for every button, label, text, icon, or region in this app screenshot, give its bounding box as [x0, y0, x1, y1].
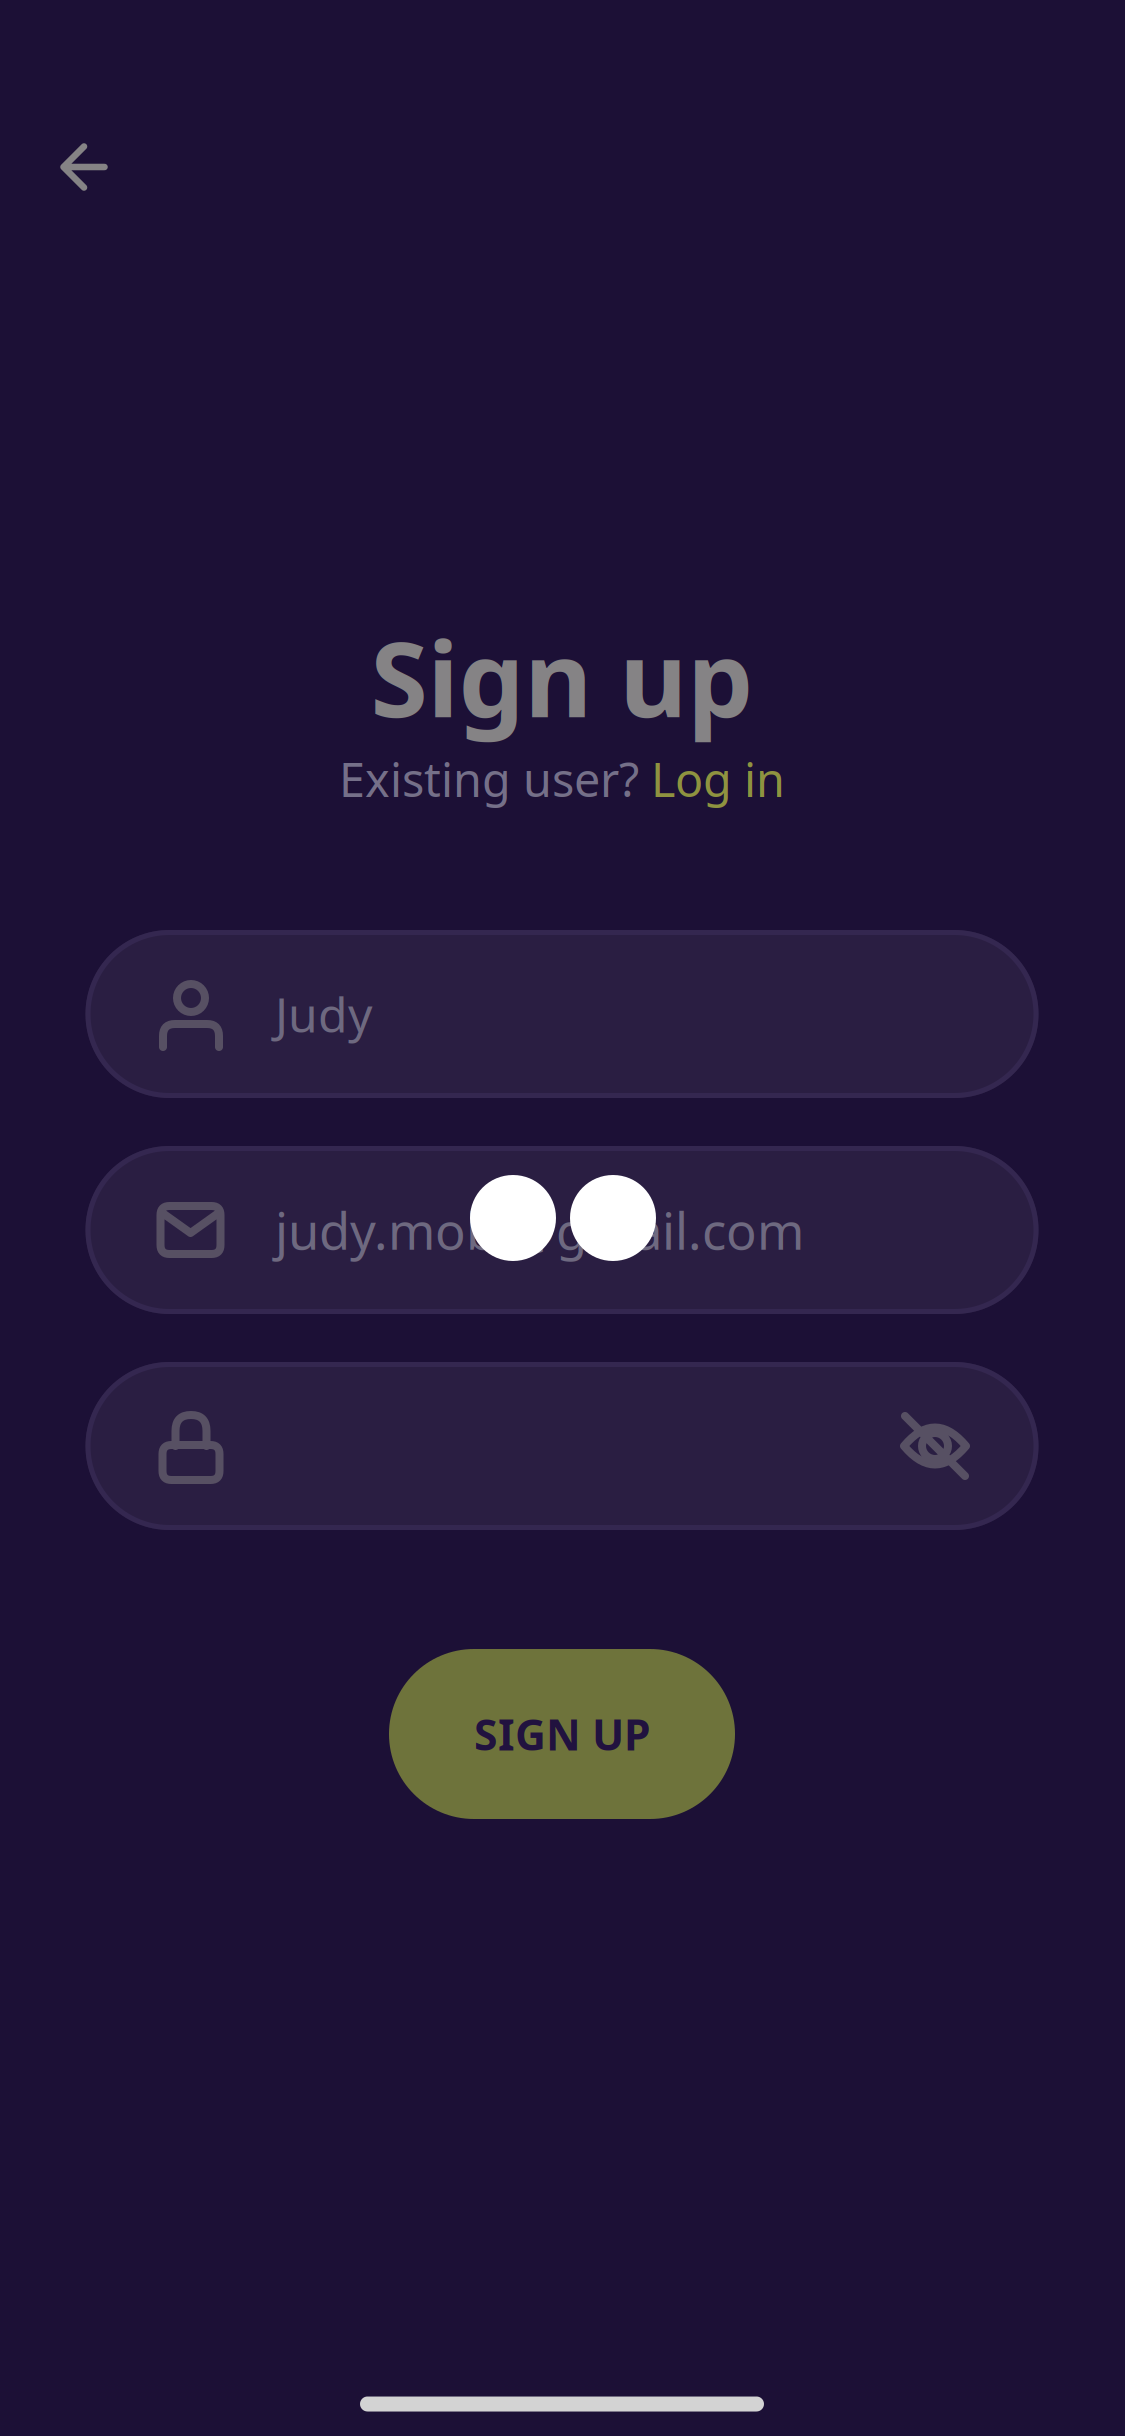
button[interactable]: Password [85, 1362, 1038, 1530]
button[interactable]: Email [85, 1146, 1038, 1314]
staticText: judy.mobi@gmail.com [275, 1196, 804, 1264]
button[interactable]: SIGN UP [389, 1649, 735, 1819]
button[interactable]: Username [85, 930, 1038, 1098]
staticText: Sign up [370, 608, 753, 746]
staticText: SIGN UP [474, 1706, 650, 1762]
button[interactable]: Log in [651, 748, 785, 810]
button[interactable]: Back [18, 101, 150, 233]
staticText: Log in [651, 748, 785, 810]
button[interactable]: Show password [875, 1386, 995, 1506]
staticText: Existing user? [339, 748, 639, 810]
staticText: Judy [275, 982, 372, 1046]
